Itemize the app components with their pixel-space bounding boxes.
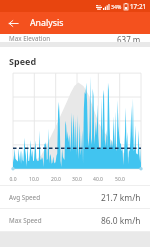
staticText: Max Elevation bbox=[9, 34, 51, 42]
staticText: 34% bbox=[111, 3, 122, 10]
button[interactable]: Max Speed bbox=[0, 209, 150, 231]
staticText: Speed bbox=[9, 55, 37, 67]
staticText: Avg Speed bbox=[9, 193, 41, 202]
button[interactable]: Back bbox=[4, 14, 22, 32]
staticText: Analysis bbox=[30, 17, 64, 29]
staticText: 637 m bbox=[117, 34, 141, 42]
staticText: 20.0 bbox=[47, 176, 65, 183]
staticText: 50.0 bbox=[111, 176, 129, 183]
staticText: 10.0 bbox=[25, 176, 43, 183]
staticText: 30.0 bbox=[68, 176, 86, 183]
button[interactable]: Avg Speed bbox=[0, 186, 150, 208]
staticText: 17:21 bbox=[130, 2, 147, 11]
staticText: 21.7 km/h bbox=[101, 192, 141, 203]
button[interactable]: Max Elevation bbox=[0, 34, 150, 42]
staticText: 86.0 km/h bbox=[101, 215, 141, 226]
staticText: 40.0 bbox=[89, 176, 107, 183]
staticText: 0.0 bbox=[4, 176, 22, 183]
staticText: Max Speed bbox=[9, 216, 42, 225]
